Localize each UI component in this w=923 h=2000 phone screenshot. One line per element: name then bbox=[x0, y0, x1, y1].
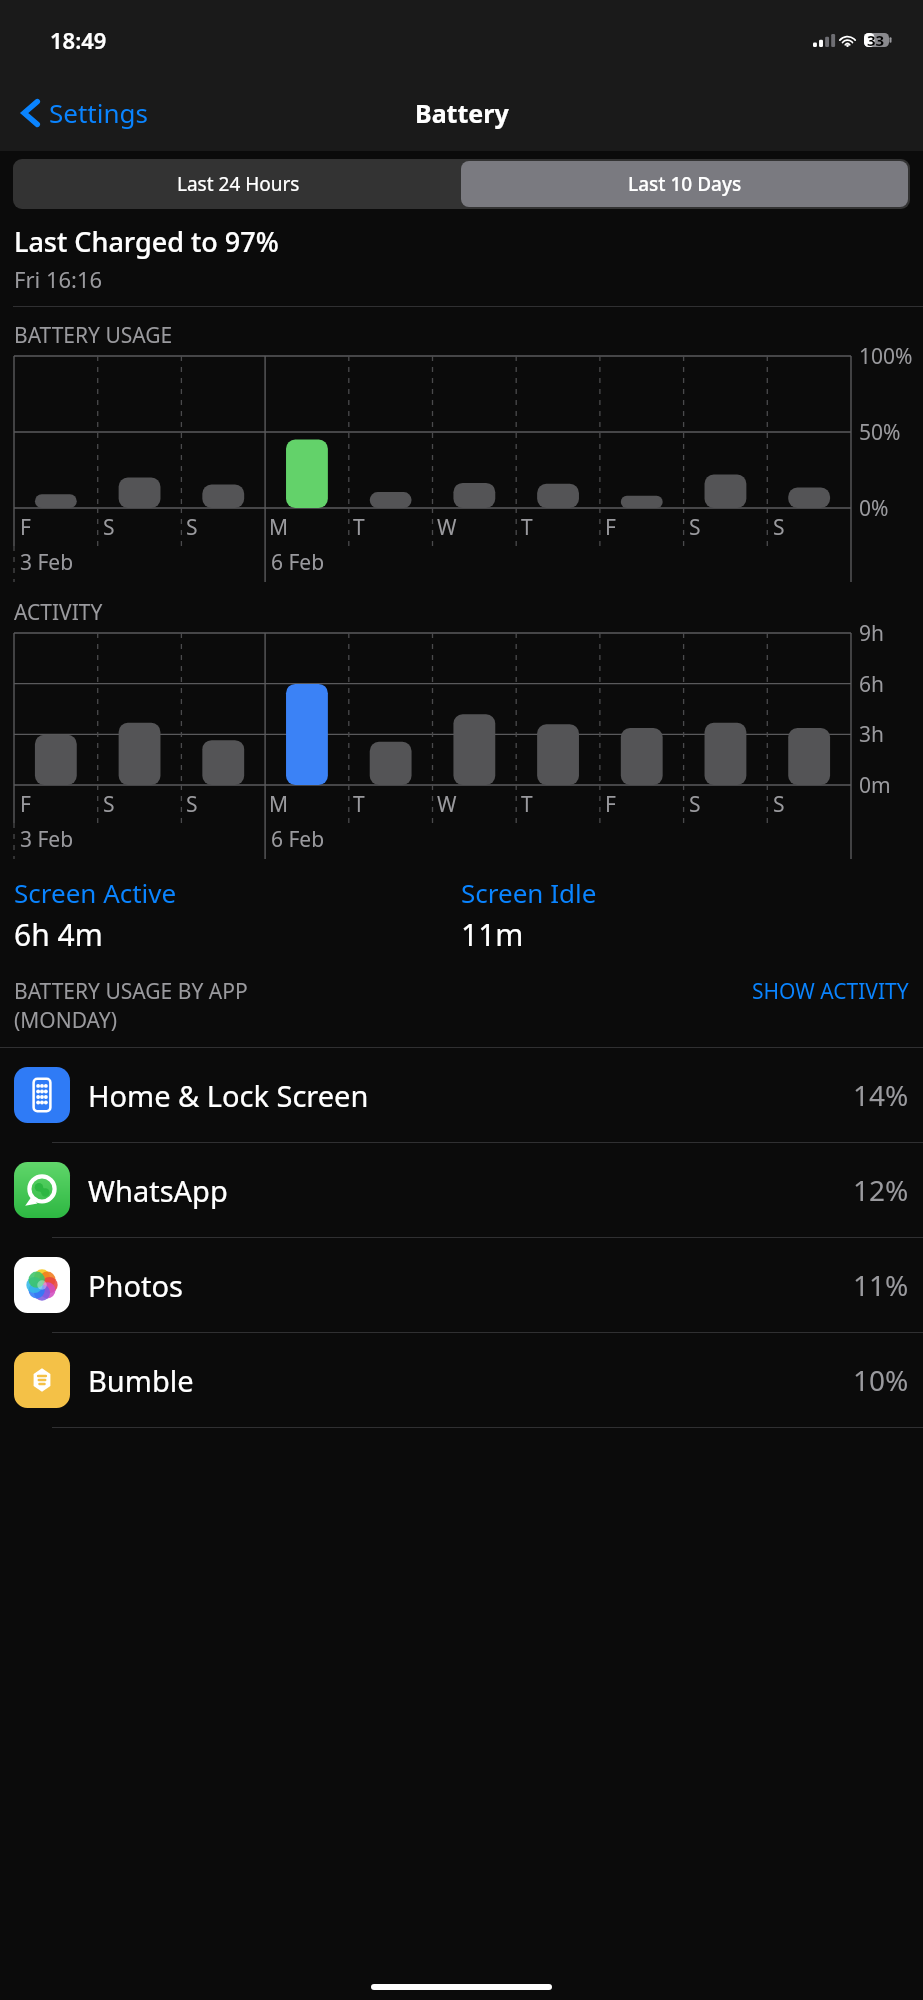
staticText: Battery bbox=[415, 96, 509, 130]
staticText: ACTIVITY bbox=[14, 598, 103, 627]
staticText: T bbox=[521, 513, 533, 542]
button[interactable]: Settings bbox=[22, 89, 156, 136]
staticText: Screen Active bbox=[14, 875, 177, 910]
staticText: F bbox=[605, 513, 616, 542]
staticText: W bbox=[437, 790, 457, 819]
staticText: W bbox=[437, 513, 457, 542]
staticText: 50% bbox=[859, 418, 901, 447]
staticText: 0m bbox=[859, 771, 891, 800]
staticText: BATTERY USAGE bbox=[14, 321, 173, 350]
staticText: 12% bbox=[853, 1171, 909, 1209]
staticText: BATTERY USAGE BY APP bbox=[14, 977, 248, 1006]
staticText: 3h bbox=[859, 720, 884, 749]
staticText: S bbox=[103, 513, 115, 542]
staticText: 6h 4m bbox=[14, 914, 103, 955]
staticText: F bbox=[20, 790, 31, 819]
staticText: Fri 16:16 bbox=[14, 264, 103, 294]
staticText: 6h bbox=[859, 670, 884, 699]
button[interactable]: Home & Lock Screen bbox=[0, 1048, 923, 1142]
staticText: S bbox=[689, 513, 701, 542]
staticText: M bbox=[269, 790, 289, 819]
staticText: Home & Lock Screen bbox=[88, 1076, 853, 1115]
staticText: S bbox=[186, 513, 198, 542]
staticText: Last 10 Days bbox=[628, 171, 742, 197]
staticText: 3 Feb bbox=[20, 548, 74, 577]
button[interactable]: SHOW ACTIVITY bbox=[752, 977, 909, 1006]
button[interactable]: WhatsApp bbox=[0, 1143, 923, 1237]
button[interactable]: Last 10 Days bbox=[461, 161, 908, 207]
staticText: 0% bbox=[859, 494, 889, 523]
staticText: Bumble bbox=[88, 1361, 853, 1400]
staticText: Settings bbox=[49, 95, 148, 130]
staticText: S bbox=[689, 790, 701, 819]
staticText: S bbox=[103, 790, 115, 819]
staticText: F bbox=[20, 513, 31, 542]
staticText: 6 Feb bbox=[271, 825, 325, 854]
staticText: 33 bbox=[867, 30, 885, 50]
staticText: S bbox=[773, 790, 785, 819]
staticText: Last Charged to 97% bbox=[14, 223, 279, 260]
staticText: (MONDAY) bbox=[14, 1006, 117, 1035]
staticText: 100% bbox=[859, 342, 913, 371]
staticText: 11m bbox=[461, 914, 524, 955]
staticText: WhatsApp bbox=[88, 1171, 853, 1210]
staticText: S bbox=[186, 790, 198, 819]
button[interactable]: Last 24 Hours bbox=[15, 161, 461, 207]
staticText: T bbox=[353, 790, 365, 819]
staticText: 10% bbox=[853, 1361, 909, 1399]
staticText: SHOW ACTIVITY bbox=[752, 977, 909, 1006]
staticText: 18:49 bbox=[50, 25, 107, 55]
staticText: T bbox=[353, 513, 365, 542]
staticText: 3 Feb bbox=[20, 825, 74, 854]
staticText: M bbox=[269, 513, 289, 542]
staticText: 14% bbox=[853, 1076, 909, 1114]
staticText: S bbox=[773, 513, 785, 542]
staticText: Screen Idle bbox=[461, 875, 597, 910]
staticText: Last 24 Hours bbox=[177, 171, 300, 197]
staticText: F bbox=[605, 790, 616, 819]
staticText: 9h bbox=[859, 619, 884, 648]
staticText: 6 Feb bbox=[271, 548, 325, 577]
staticText: Photos bbox=[88, 1266, 853, 1305]
button[interactable]: Bumble bbox=[0, 1333, 923, 1427]
staticText: 11% bbox=[853, 1266, 909, 1304]
staticText: T bbox=[521, 790, 533, 819]
button[interactable]: Photos bbox=[0, 1238, 923, 1332]
